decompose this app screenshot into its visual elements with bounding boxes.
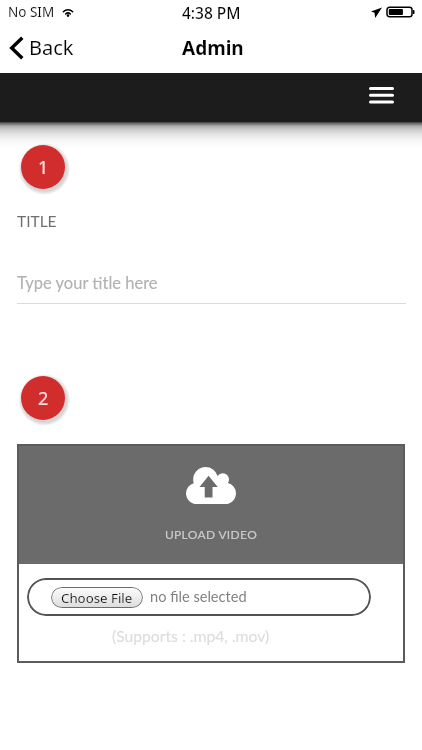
staticText: no file selected: [150, 588, 247, 606]
staticText: 2: [38, 386, 49, 411]
button[interactable]: 1: [21, 145, 65, 189]
button[interactable]: Back: [0, 27, 86, 70]
staticText: 4:38 PM: [182, 2, 241, 23]
button[interactable]: UPLOAD VIDEO: [17, 444, 405, 564]
staticText: (Supports : .mp4, .mov): [112, 627, 270, 646]
button[interactable]: 2: [21, 376, 65, 420]
staticText: UPLOAD VIDEO: [17, 527, 405, 541]
staticText: Admin: [182, 35, 244, 61]
staticText: Back: [29, 34, 74, 61]
staticText: Choose File: [61, 589, 133, 607]
staticText: No SIM: [8, 3, 55, 21]
button[interactable]: Open navigation menu: [357, 74, 405, 122]
staticText: Type your title here: [17, 273, 158, 293]
staticText: 1: [38, 155, 49, 180]
staticText: TITLE: [17, 212, 57, 231]
button[interactable]: Choose File: [27, 578, 371, 616]
